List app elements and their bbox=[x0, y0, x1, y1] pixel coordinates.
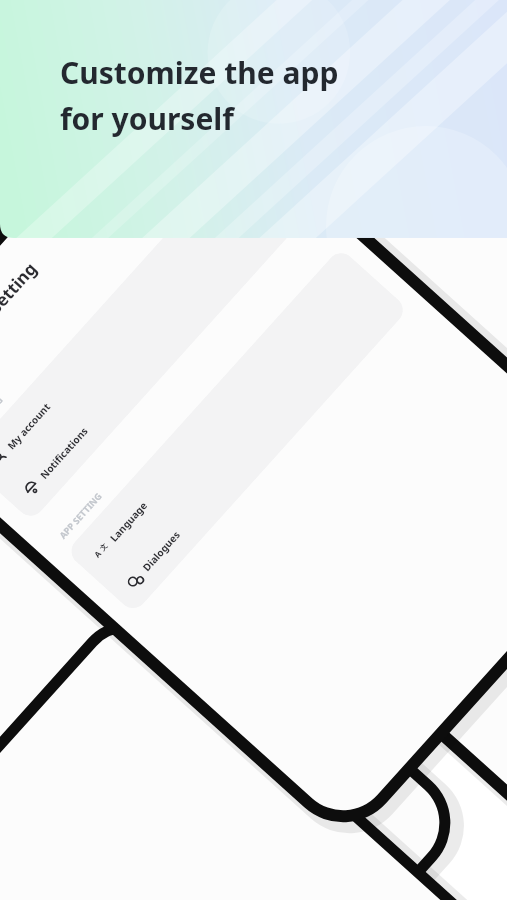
button[interactable]: Profile tab bbox=[250, 252, 282, 268]
